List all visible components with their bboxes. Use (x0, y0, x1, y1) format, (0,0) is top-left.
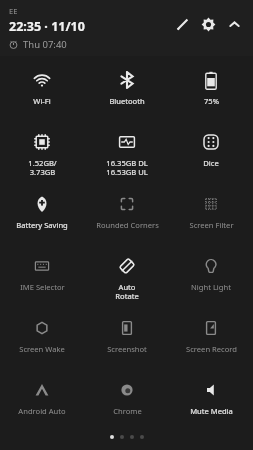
button[interactable]: Rounded Corners (85, 185, 169, 247)
button[interactable]: Mute Media (169, 371, 253, 433)
staticText: Android Auto (18, 406, 66, 416)
button[interactable]: Collapse (221, 11, 247, 37)
staticText: Chrome (113, 406, 142, 416)
button[interactable]: Page 4 (140, 435, 144, 439)
button[interactable]: Settings (195, 11, 221, 37)
button[interactable]: Battery Saving (0, 185, 84, 247)
button[interactable]: Screen Record (169, 309, 253, 371)
button[interactable]: Chrome (85, 371, 169, 433)
staticText: Wi-Fi (33, 96, 51, 106)
staticText: Bluetooth (109, 96, 145, 106)
button[interactable]: Auto Rotate (85, 247, 169, 309)
button[interactable]: Page 3 (130, 435, 134, 439)
staticText: 16.35GB DL 16.53GB UL (106, 158, 148, 177)
button[interactable]: Edit (169, 11, 195, 37)
staticText: Battery Saving (16, 220, 68, 230)
button[interactable]: Memory usage (0, 123, 84, 185)
staticText: Screen Wake (19, 344, 65, 354)
button[interactable]: Data usage (85, 123, 169, 185)
button[interactable]: Wi-Fi (0, 61, 84, 123)
staticText: Night Light (191, 282, 231, 292)
staticText: IME Selector (20, 282, 65, 292)
staticText: Screen Record (186, 344, 237, 354)
button[interactable]: Page 2 (120, 435, 124, 439)
staticText: Dice (203, 158, 219, 168)
button[interactable]: Bluetooth (85, 61, 169, 123)
button[interactable]: Page 1 (110, 435, 114, 439)
button[interactable]: Android Auto (0, 371, 84, 433)
staticText: Rounded Corners (96, 220, 159, 230)
staticText: Screenshot (107, 344, 147, 354)
button[interactable]: Battery 75 percent (169, 61, 253, 123)
staticText: Auto Rotate (115, 282, 139, 301)
staticText: Screen Filter (189, 220, 234, 230)
staticText: 22:35 · 11/10 (9, 18, 85, 35)
button[interactable]: Night Light (169, 247, 253, 309)
staticText: 75% (204, 96, 219, 106)
button[interactable]: Dice (169, 123, 253, 185)
button[interactable]: Screen Wake (0, 309, 84, 371)
staticText: EE (9, 6, 18, 16)
button[interactable]: IME Selector (0, 247, 84, 309)
button[interactable]: Screen Filter (169, 185, 253, 247)
staticText: Thu 07:40 (23, 38, 67, 51)
button[interactable]: Screenshot (85, 309, 169, 371)
staticText: Mute Media (190, 406, 233, 416)
staticText: 1.52GB/ 3.73GB (28, 158, 57, 177)
